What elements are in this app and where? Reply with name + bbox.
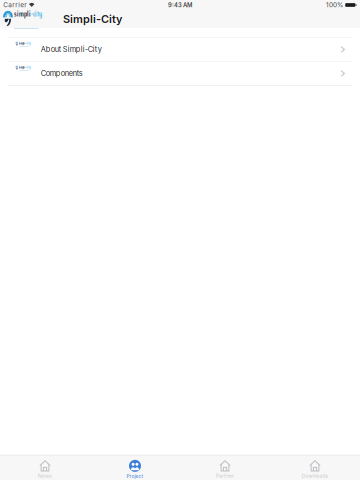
staticText: simpli [19, 65, 26, 70]
button[interactable]: simpli [0, 38, 360, 62]
staticText: Partner [216, 473, 234, 479]
staticText: -city [31, 7, 42, 20]
staticText: Carrier [3, 1, 26, 9]
staticText: Simpli-City [63, 12, 122, 26]
button[interactable]: Project [90, 457, 180, 480]
staticText: Downloads [301, 473, 328, 479]
button[interactable]: Partner [180, 457, 270, 480]
staticText: -city [26, 41, 31, 46]
button[interactable]: News [0, 457, 90, 480]
staticText: News [38, 473, 52, 479]
staticText: simpli [14, 7, 31, 20]
staticText: 100% [326, 1, 343, 9]
staticText: simpli [19, 41, 26, 46]
button[interactable]: simpli [0, 62, 360, 86]
staticText: Project [126, 473, 143, 479]
staticText: Components [41, 69, 83, 78]
button[interactable]: Downloads [270, 457, 360, 480]
button[interactable]: Simpli-City [4, 10, 42, 26]
staticText: -city [26, 65, 31, 70]
staticText: 9:43 AM [168, 1, 192, 9]
staticText: About Simpli-City [41, 45, 102, 54]
